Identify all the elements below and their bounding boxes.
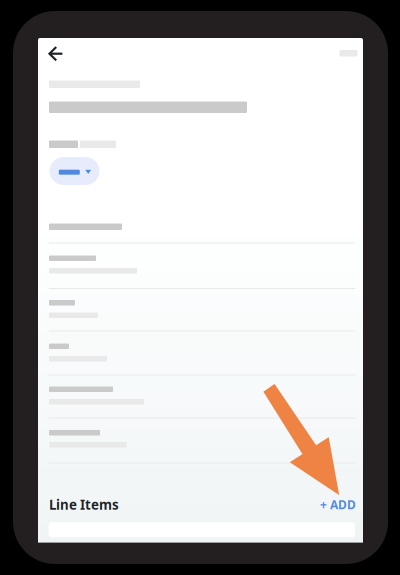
staticText: + ADD (320, 496, 356, 512)
staticText: Line Items (49, 496, 119, 513)
button[interactable]: + ADD (320, 496, 356, 512)
button[interactable]: Back (0, 0, 400, 575)
button[interactable]: Status (49, 157, 99, 185)
